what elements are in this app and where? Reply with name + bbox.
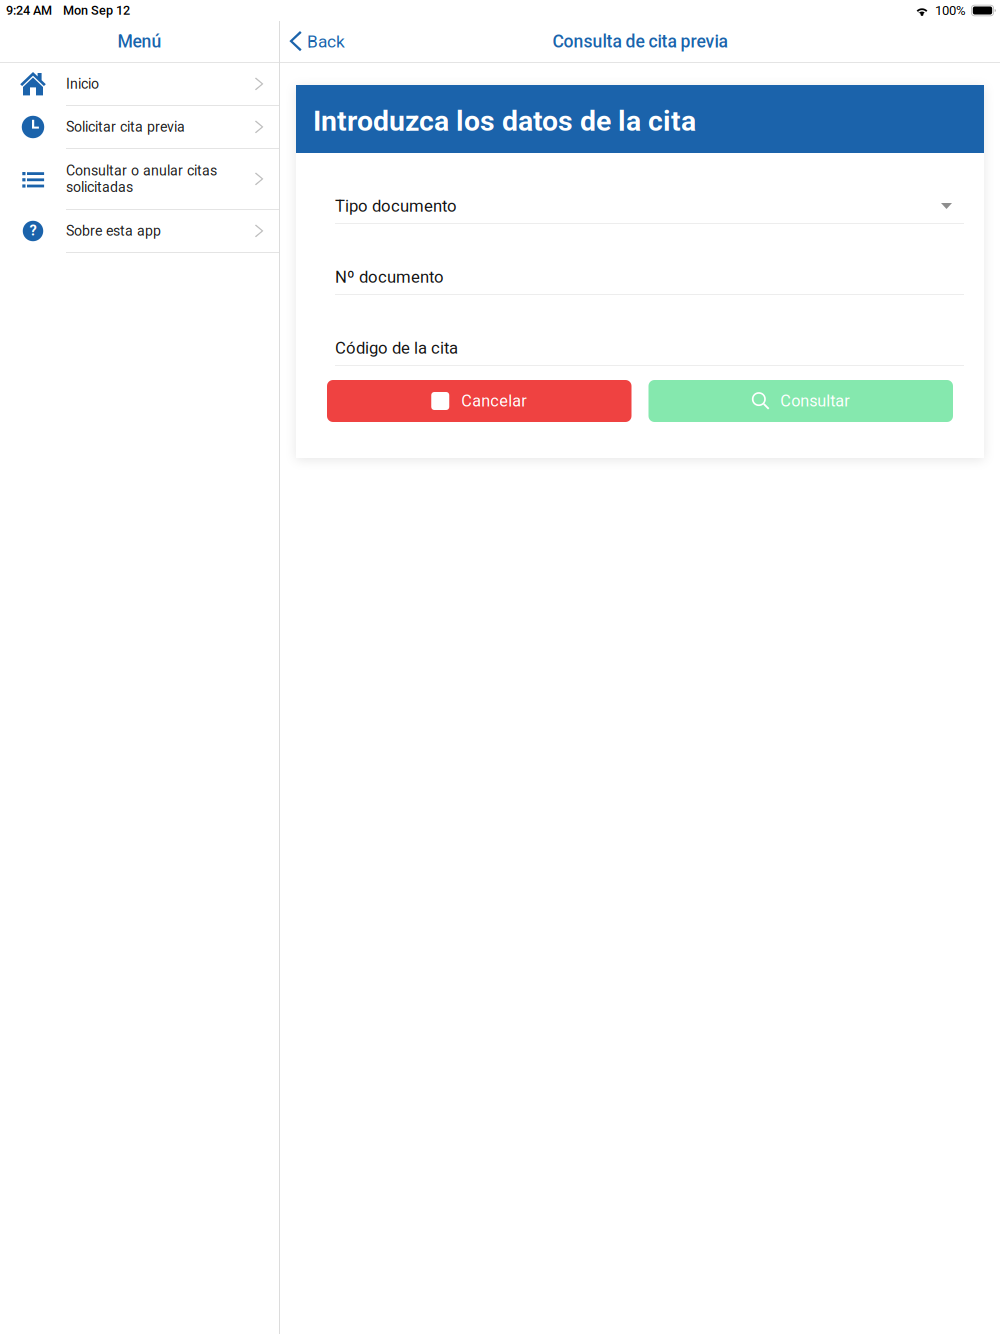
- button[interactable]: Solicitar cita previa: [0, 106, 279, 149]
- staticText: Cancelar: [461, 391, 527, 411]
- button[interactable]: Back: [280, 23, 345, 60]
- button[interactable]: Menú: [0, 21, 279, 62]
- button[interactable]: Cancelar: [327, 380, 631, 422]
- staticText: Consultar: [780, 391, 850, 411]
- button[interactable]: Inicio: [0, 63, 279, 106]
- staticText: Tipo documento: [335, 196, 457, 216]
- staticText: Solicitar cita previa: [66, 119, 185, 135]
- button[interactable]: ?: [0, 210, 279, 253]
- staticText: Mon Sep 12: [63, 3, 130, 18]
- staticText: Consulta de cita previa: [552, 31, 727, 52]
- staticText: 100%: [935, 3, 966, 18]
- button[interactable]: Consultar o anular citas solicitadas: [0, 149, 279, 210]
- button[interactable]: Consultar: [648, 380, 953, 422]
- staticText: 9:24 AM: [6, 3, 52, 18]
- staticText: Menú: [117, 31, 161, 52]
- staticText: Introduzca los datos de la cita: [313, 104, 696, 138]
- staticText: ?: [29, 222, 36, 239]
- staticText: Sobre esta app: [66, 223, 161, 239]
- staticText: Código de la cita: [335, 338, 458, 358]
- staticText: Nº documento: [335, 267, 444, 287]
- staticText: Inicio: [66, 76, 99, 92]
- staticText: Back: [307, 31, 345, 52]
- staticText: Consultar o anular citas solicitadas: [66, 162, 217, 195]
